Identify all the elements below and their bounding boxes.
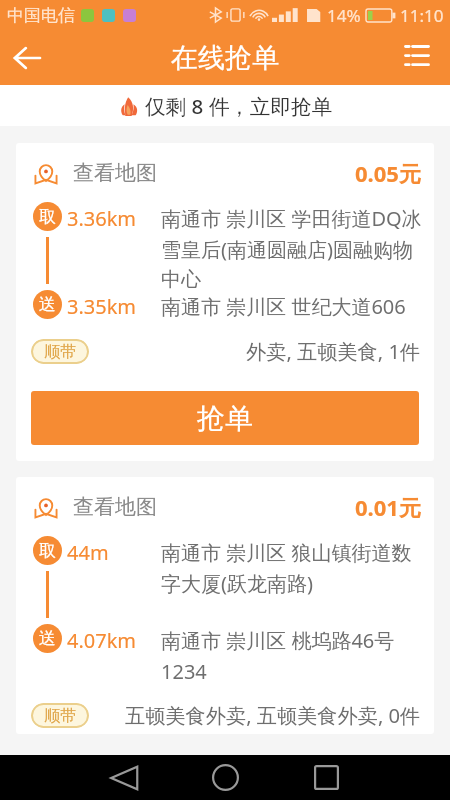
staticText: 送 [39, 294, 56, 315]
staticText: 3.36km [67, 202, 137, 232]
button[interactable]: 抢单 [31, 391, 419, 445]
button[interactable]: Recent apps [303, 755, 349, 800]
staticText: 南通市 崇川区 狼山镇街道数字大厦(跃龙南路) [161, 536, 428, 598]
staticText: 取 [39, 540, 56, 561]
staticText: 查看地图 [73, 160, 157, 186]
staticText: 11:10 [400, 4, 444, 27]
button[interactable]: 顺带 [31, 703, 89, 728]
button[interactable]: Home [202, 755, 248, 800]
staticText: 五顿美食外卖, 五顿美食外卖, 0件 [125, 701, 421, 729]
staticText: 14% [327, 4, 361, 27]
staticText: 0.01元 [355, 492, 421, 522]
button[interactable]: Back [6, 37, 48, 79]
button[interactable]: 顺带 [31, 339, 89, 364]
staticText: 0.05元 [355, 158, 421, 188]
staticText: 南通市 崇川区 世纪大道606 [161, 290, 406, 321]
staticText: 中国电信 [7, 5, 75, 26]
staticText: 3.35km [67, 290, 137, 320]
staticText: 在线抢单 [171, 41, 279, 75]
staticText: 送 [39, 628, 56, 649]
staticText: 南通市 崇川区 桃坞路46号1234 [161, 624, 428, 685]
button[interactable]: 查看地图 [16, 477, 434, 734]
button[interactable]: Back [101, 755, 147, 800]
staticText: 南通市 崇川区 学田街道DQ冰雪皇后(南通圆融店)圆融购物中心 [161, 202, 428, 294]
button[interactable]: 查看地图 [16, 143, 434, 461]
staticText: 抢单 [197, 401, 253, 436]
staticText: 取 [39, 206, 56, 227]
staticText: 顺带 [44, 706, 76, 726]
staticText: 外卖, 五顿美食, 1件 [246, 337, 421, 365]
staticText: 4.07km [67, 624, 137, 654]
staticText: 仅剩 8 件，立即抢单 [145, 92, 333, 120]
button[interactable]: Order list [396, 37, 438, 79]
staticText: 44m [67, 536, 109, 566]
staticText: 顺带 [44, 342, 76, 362]
staticText: 查看地图 [73, 494, 157, 520]
